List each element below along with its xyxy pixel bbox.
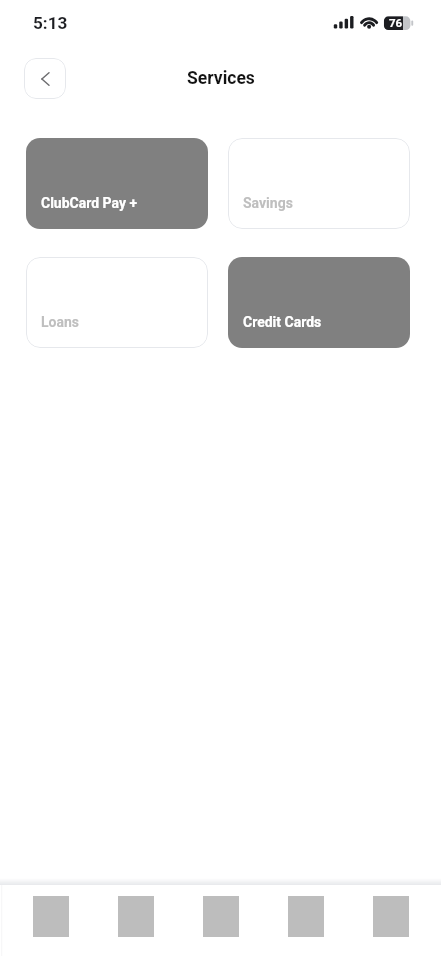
staticText: Savings [243, 195, 293, 211]
button[interactable]: Payments [178, 885, 263, 956]
button[interactable]: Services [263, 885, 348, 956]
button[interactable]: Back [24, 58, 66, 99]
button[interactable]: Profile [348, 885, 433, 956]
staticText: 76 [389, 16, 403, 29]
button[interactable]: Home [8, 885, 93, 956]
button[interactable]: Savings [228, 138, 410, 229]
staticText: ClubCard Pay + [41, 195, 138, 211]
button[interactable]: Cards [93, 885, 178, 956]
button[interactable]: ClubCard Pay + [26, 138, 208, 229]
staticText: Services [187, 68, 255, 89]
button[interactable]: Loans [26, 257, 208, 348]
staticText: Loans [41, 314, 80, 330]
staticText: 5:13 [33, 13, 68, 33]
staticText: Credit Cards [243, 314, 322, 330]
button[interactable]: Credit Cards [228, 257, 410, 348]
